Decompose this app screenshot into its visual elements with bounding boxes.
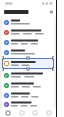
button[interactable] — [2, 17, 54, 27]
button[interactable] — [2, 80, 54, 90]
button[interactable]: Activity — [29, 108, 40, 117]
button[interactable] — [2, 27, 54, 37]
button[interactable] — [2, 57, 54, 70]
button[interactable]: Home — [2, 108, 13, 117]
button[interactable] — [2, 47, 54, 57]
button[interactable] — [2, 90, 54, 100]
button[interactable] — [2, 100, 54, 108]
button[interactable] — [2, 70, 54, 80]
button[interactable]: Cards — [16, 108, 27, 117]
button[interactable]: Profile — [43, 108, 54, 117]
button[interactable] — [2, 37, 54, 47]
